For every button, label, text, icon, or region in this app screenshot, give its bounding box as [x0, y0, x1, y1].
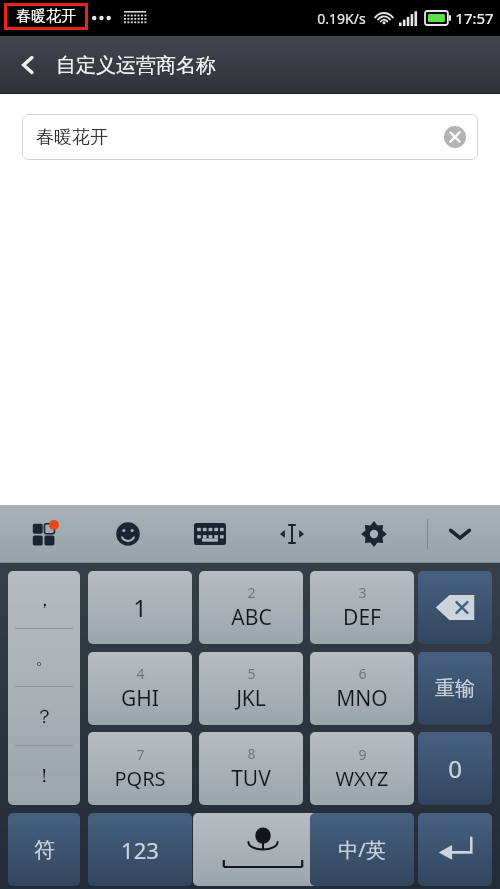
staticText: 5 [247, 664, 256, 683]
button[interactable]: 7 [88, 732, 192, 805]
staticText: 1 [133, 591, 147, 624]
button[interactable]: Punctuation [8, 571, 80, 805]
button[interactable]: Settings [352, 505, 396, 563]
staticText: 6 [358, 664, 367, 683]
button[interactable]: 2 [199, 571, 303, 644]
button[interactable]: Input methods [24, 505, 68, 563]
staticText: 8 [247, 744, 256, 763]
button[interactable]: 3 [310, 571, 414, 644]
button[interactable]: 1 [88, 571, 192, 644]
button[interactable]: Back [0, 36, 56, 94]
staticText: 0 [448, 752, 462, 785]
staticText: 4 [136, 664, 145, 683]
staticText: TUV [231, 764, 271, 793]
button[interactable]: Backspace [418, 571, 492, 644]
button[interactable]: 5 [199, 652, 303, 725]
staticText: 中/英 [338, 836, 386, 863]
button[interactable]: Keyboard layout [188, 505, 232, 563]
staticText: 7 [136, 745, 145, 764]
button[interactable]: Hide keyboard [438, 505, 482, 563]
staticText: 春暖花开 [36, 126, 108, 149]
staticText: 9 [358, 745, 367, 764]
button[interactable]: 9 [310, 732, 414, 805]
button[interactable]: 8 [199, 732, 303, 805]
button[interactable]: Space / voice input [193, 813, 333, 886]
button[interactable]: 重输 [418, 652, 492, 725]
staticText: 自定义运营商名称 [56, 53, 216, 78]
staticText: WXYZ [335, 765, 389, 792]
staticText: 重输 [435, 676, 475, 701]
staticText: JKL [236, 684, 266, 713]
staticText: MNO [336, 684, 388, 713]
staticText: GHI [121, 684, 159, 713]
button[interactable]: 0 [418, 732, 492, 805]
button[interactable]: 4 [88, 652, 192, 725]
staticText: ？ [35, 705, 54, 729]
staticText: 2 [247, 583, 256, 602]
button[interactable]: Move cursor [270, 505, 314, 563]
staticText: ABC [231, 603, 272, 632]
button[interactable]: 春暖花开 [22, 114, 478, 160]
button[interactable]: Emoji [106, 505, 150, 563]
button[interactable]: 中/英 [310, 813, 414, 886]
staticText: 17:57 [455, 8, 494, 28]
button[interactable]: 6 [310, 652, 414, 725]
staticText: DEF [343, 603, 381, 632]
staticText: 123 [121, 835, 159, 865]
staticText: ！ [35, 764, 54, 788]
staticText: 。 [35, 646, 54, 670]
button[interactable]: 符 [8, 813, 80, 886]
staticText: 春暖花开 [16, 7, 76, 26]
button[interactable]: 123 [88, 813, 192, 886]
staticText: ， [35, 588, 54, 612]
staticText: 3 [358, 583, 367, 602]
button[interactable]: Enter [418, 813, 492, 886]
staticText: 符 [34, 837, 55, 863]
staticText: 0.19K/s [317, 9, 366, 28]
button[interactable]: Clear text [442, 124, 468, 150]
staticText: PQRS [114, 765, 166, 792]
